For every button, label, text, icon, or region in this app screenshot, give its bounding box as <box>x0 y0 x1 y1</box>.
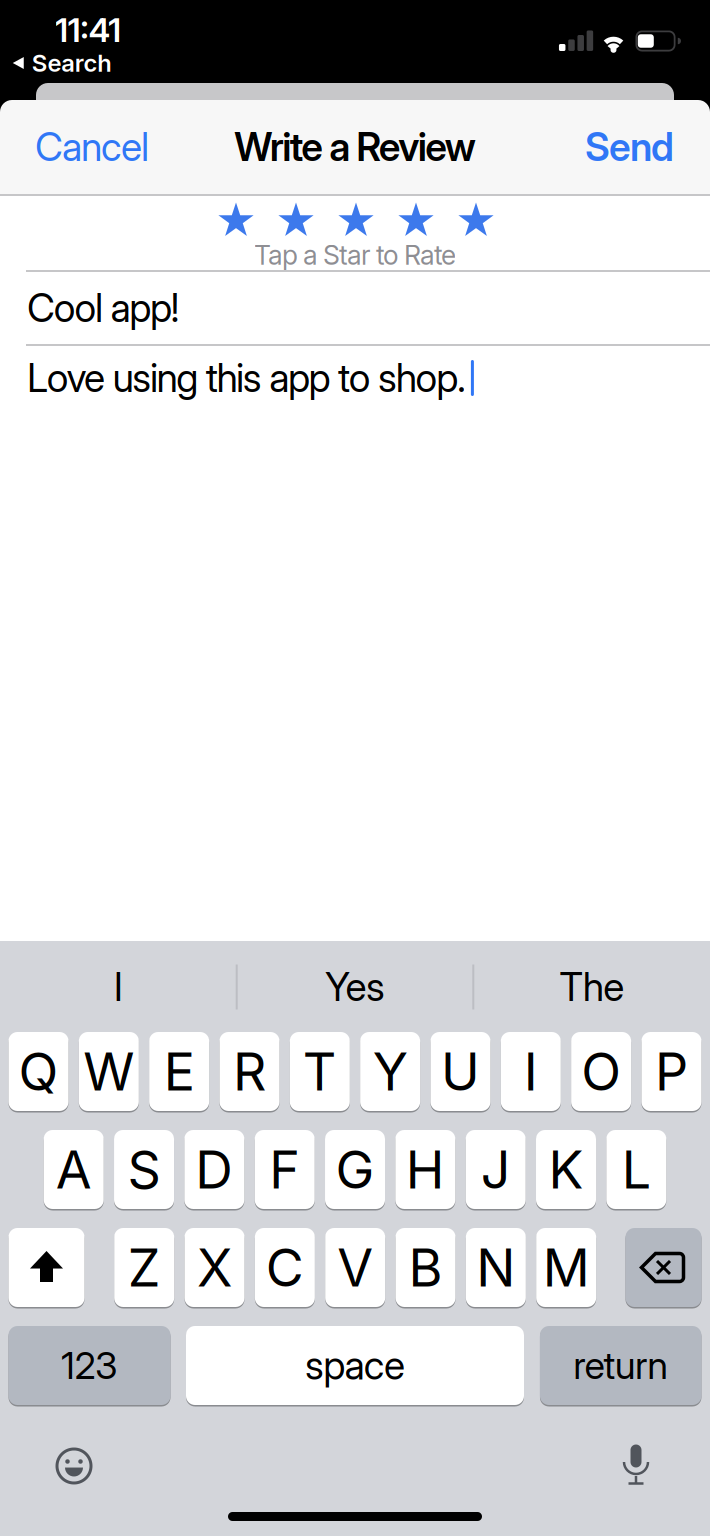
button[interactable]: D <box>184 1129 244 1210</box>
staticText: Tap a Star to Rate <box>254 239 456 271</box>
staticText: O <box>581 1040 621 1103</box>
button[interactable]: F <box>255 1129 315 1210</box>
button[interactable]: I <box>501 1031 561 1112</box>
staticText: J <box>481 1138 511 1201</box>
staticText: U <box>441 1040 480 1103</box>
button[interactable]: T <box>290 1031 350 1112</box>
staticText: W <box>83 1040 134 1103</box>
button[interactable]: Delete <box>625 1227 701 1308</box>
button[interactable]: Rate 5 stars <box>456 201 496 241</box>
staticText: Q <box>18 1040 58 1103</box>
staticText: C <box>266 1236 304 1299</box>
staticText: return <box>573 1343 668 1388</box>
button[interactable]: Emoji <box>52 1444 96 1488</box>
staticText: E <box>164 1040 195 1103</box>
button[interactable]: Q <box>8 1031 68 1112</box>
button[interactable]: V <box>325 1227 385 1308</box>
staticText: Search <box>32 48 111 77</box>
button[interactable]: Rate 3 stars <box>336 201 376 241</box>
button[interactable]: P <box>641 1031 701 1112</box>
staticText: space <box>305 1342 405 1389</box>
button[interactable]: Rate 1 star <box>216 201 256 241</box>
button[interactable]: U <box>430 1031 490 1112</box>
staticText: M <box>543 1236 590 1299</box>
button[interactable]: Search <box>13 48 111 77</box>
staticText: V <box>337 1236 373 1299</box>
staticText: The <box>559 964 624 1010</box>
button[interactable]: Rate 4 stars <box>396 201 436 241</box>
button[interactable]: S <box>114 1129 174 1210</box>
staticText: 123 <box>61 1343 118 1388</box>
button[interactable]: return <box>540 1325 701 1406</box>
button[interactable]: Rate 2 stars <box>276 201 316 241</box>
button[interactable]: Cancel <box>35 124 149 170</box>
button[interactable]: G <box>325 1129 385 1210</box>
staticText: F <box>269 1138 300 1201</box>
staticText: N <box>476 1236 515 1299</box>
button[interactable]: Z <box>114 1227 174 1308</box>
staticText: Yes <box>325 964 385 1010</box>
button[interactable]: J <box>466 1129 526 1210</box>
button[interactable]: 123 <box>8 1325 170 1406</box>
staticText: S <box>127 1138 160 1201</box>
staticText: 11:41 <box>55 10 121 50</box>
staticText: B <box>408 1236 442 1299</box>
button[interactable]: R <box>219 1031 279 1112</box>
button[interactable]: L <box>606 1129 666 1210</box>
staticText: X <box>197 1236 232 1299</box>
staticText: T <box>303 1040 337 1103</box>
staticText: P <box>655 1040 688 1103</box>
staticText: Send <box>585 124 674 170</box>
button[interactable]: A <box>44 1129 104 1210</box>
button[interactable]: Send <box>585 124 674 170</box>
staticText: I <box>114 964 123 1010</box>
button[interactable]: E <box>149 1031 209 1112</box>
staticText: Z <box>128 1236 161 1299</box>
staticText: I <box>524 1040 538 1103</box>
staticText: A <box>56 1138 92 1201</box>
staticText: L <box>622 1138 651 1201</box>
staticText: Y <box>373 1040 408 1103</box>
button[interactable]: W <box>79 1031 139 1112</box>
button[interactable]: space <box>186 1325 524 1406</box>
staticText: H <box>406 1138 445 1201</box>
button[interactable]: O <box>571 1031 631 1112</box>
button[interactable]: I <box>13 955 223 1019</box>
button[interactable]: Y <box>360 1031 420 1112</box>
button[interactable]: H <box>395 1129 455 1210</box>
staticText: Cool app! <box>27 285 180 331</box>
staticText: K <box>548 1138 583 1201</box>
button[interactable]: Shift <box>8 1227 84 1308</box>
button[interactable]: X <box>184 1227 244 1308</box>
button[interactable]: C <box>255 1227 315 1308</box>
staticText: Write a Review <box>234 124 476 170</box>
button[interactable]: M <box>536 1227 596 1308</box>
staticText: G <box>335 1138 374 1201</box>
button[interactable]: K <box>536 1129 596 1210</box>
button[interactable]: Yes <box>250 955 460 1019</box>
button[interactable]: The <box>487 955 697 1019</box>
staticText: D <box>195 1138 233 1201</box>
staticText: Cancel <box>35 124 149 170</box>
button[interactable]: B <box>395 1227 455 1308</box>
staticText: Love using this app to shop. <box>27 355 466 401</box>
button[interactable]: Dictation <box>614 1442 658 1486</box>
button[interactable]: N <box>466 1227 526 1308</box>
staticText: R <box>233 1040 266 1103</box>
